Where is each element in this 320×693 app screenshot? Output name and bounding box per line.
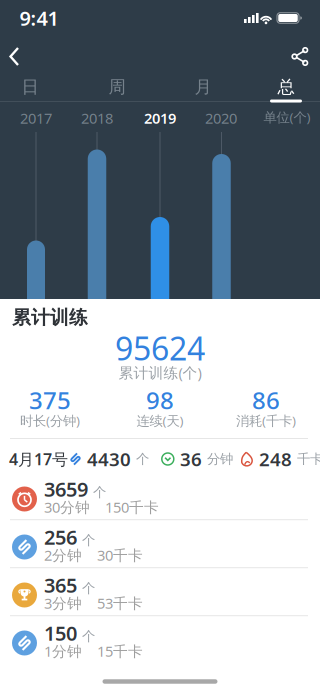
staticText: 周 bbox=[108, 76, 125, 98]
staticText: 256 bbox=[44, 524, 77, 550]
staticText: 分钟 bbox=[207, 451, 233, 467]
staticText: 个 bbox=[82, 628, 95, 644]
button[interactable]: 2020 bbox=[194, 107, 248, 129]
staticText: 千卡 bbox=[297, 451, 320, 467]
staticText: 95624 bbox=[115, 327, 205, 369]
staticText: 累计训练 bbox=[12, 306, 88, 329]
staticText: 个 bbox=[82, 580, 95, 596]
staticText: 2017 bbox=[20, 108, 52, 128]
staticText: 消耗(千卡) bbox=[236, 412, 296, 429]
staticText: 个 bbox=[136, 451, 149, 467]
staticText: 86 bbox=[252, 384, 280, 416]
staticText: 150千卡 bbox=[105, 497, 159, 517]
staticText: 时长(分钟) bbox=[20, 412, 80, 429]
staticText: 150 bbox=[44, 620, 77, 646]
staticText: 日 bbox=[21, 76, 38, 98]
staticText: 连续(天) bbox=[136, 412, 183, 429]
staticText: 个 bbox=[93, 484, 106, 500]
button[interactable]: 月 bbox=[172, 72, 234, 102]
button[interactable]: 日 bbox=[0, 72, 61, 102]
button[interactable]: 周 bbox=[86, 72, 148, 102]
staticText: 2018 bbox=[81, 108, 113, 128]
staticText: 2019 bbox=[144, 108, 176, 128]
staticText: 365 bbox=[44, 572, 77, 598]
staticText: 2分钟 bbox=[44, 545, 82, 565]
staticText: 4月17号 bbox=[9, 448, 68, 470]
staticText: 53千卡 bbox=[97, 593, 143, 613]
staticText: 3659 bbox=[44, 476, 88, 502]
button[interactable]: Back bbox=[9, 44, 29, 69]
button[interactable]: 总 bbox=[255, 72, 317, 102]
staticText: 30千卡 bbox=[97, 545, 143, 565]
staticText: 单位(个) bbox=[263, 108, 310, 126]
staticText: 375 bbox=[29, 384, 71, 416]
staticText: 36 bbox=[180, 447, 202, 471]
staticText: 1分钟 bbox=[44, 641, 82, 661]
staticText: 9:41 bbox=[19, 5, 58, 31]
staticText: 4430 bbox=[87, 447, 131, 471]
staticText: 累计训练(个) bbox=[118, 363, 201, 382]
staticText: 98 bbox=[146, 384, 174, 416]
staticText: 30分钟 bbox=[44, 497, 90, 517]
staticText: 2020 bbox=[205, 108, 237, 128]
button[interactable]: 2017 bbox=[9, 107, 63, 129]
button[interactable]: 2019 bbox=[133, 107, 187, 129]
staticText: 15千卡 bbox=[97, 641, 143, 661]
staticText: 3分钟 bbox=[44, 593, 82, 613]
button[interactable]: Share bbox=[288, 44, 312, 68]
staticText: 月 bbox=[194, 76, 211, 98]
button[interactable]: 2018 bbox=[70, 107, 124, 129]
staticText: 个 bbox=[82, 532, 95, 548]
staticText: 248 bbox=[259, 447, 292, 471]
staticText: 总 bbox=[277, 76, 294, 98]
